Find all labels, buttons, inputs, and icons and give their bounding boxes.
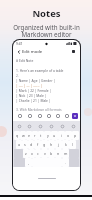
button[interactable]: v bbox=[41, 149, 48, 158]
button[interactable]: Italic bbox=[25, 111, 35, 121]
staticText: | ---- | --- | ------ | bbox=[16, 83, 43, 87]
button[interactable]: u bbox=[51, 131, 58, 140]
button[interactable]: r bbox=[32, 131, 38, 140]
staticText: e bbox=[28, 133, 31, 138]
button[interactable]: Suggestion bbox=[68, 121, 79, 131]
staticText: u bbox=[53, 133, 56, 138]
staticText: o bbox=[67, 133, 70, 138]
staticText: | Nick | 23 | Male | bbox=[16, 93, 47, 97]
staticText: Edit mode bbox=[22, 49, 43, 55]
staticText: c bbox=[37, 151, 39, 156]
button[interactable]: e bbox=[26, 131, 32, 140]
staticText: i bbox=[61, 133, 62, 138]
staticText: s bbox=[24, 142, 26, 147]
staticText: d bbox=[30, 142, 33, 147]
staticText: y bbox=[47, 133, 49, 138]
staticText: 2. bbox=[16, 73, 19, 77]
button[interactable]: w bbox=[20, 131, 26, 140]
staticText: v bbox=[44, 151, 46, 156]
staticText: f bbox=[37, 142, 39, 147]
button[interactable]: Back bbox=[15, 48, 22, 55]
staticText: z bbox=[25, 151, 27, 156]
button[interactable]: Comma bbox=[25, 158, 32, 167]
button[interactable]: q bbox=[14, 131, 20, 140]
button[interactable]: Link bbox=[35, 111, 44, 121]
button[interactable]: g bbox=[41, 140, 48, 149]
staticText: q bbox=[16, 133, 19, 138]
staticText: m bbox=[64, 151, 68, 156]
button[interactable]: x bbox=[29, 149, 35, 158]
button[interactable]: Suggestion bbox=[46, 121, 57, 131]
button[interactable]: Suggestion bbox=[35, 121, 46, 131]
staticText: | Mark | 22 | Female | bbox=[16, 88, 52, 92]
staticText: g bbox=[43, 142, 46, 147]
staticText: . bbox=[65, 160, 66, 165]
button[interactable]: d bbox=[28, 140, 34, 149]
button[interactable]: i bbox=[58, 131, 65, 140]
staticText: | Charlie | 21 | Male | bbox=[16, 98, 51, 102]
button[interactable]: s bbox=[22, 140, 28, 149]
button[interactable]: Code bbox=[62, 111, 71, 121]
button[interactable]: Suggestion bbox=[14, 121, 24, 131]
button[interactable]: p bbox=[72, 131, 79, 140]
button[interactable]: b bbox=[48, 149, 55, 158]
staticText: t bbox=[40, 133, 42, 138]
staticText: | Name | Age | Gender | bbox=[16, 78, 56, 82]
button[interactable]: Suggestion bbox=[24, 121, 35, 131]
button[interactable]: o bbox=[65, 131, 72, 140]
staticText: n bbox=[57, 151, 60, 156]
button[interactable]: k bbox=[62, 140, 69, 149]
staticText: 3. With Markdown all formats bbox=[16, 107, 62, 111]
button[interactable]: c bbox=[35, 149, 41, 158]
button[interactable]: z bbox=[23, 149, 29, 158]
staticText: Notes bbox=[32, 7, 61, 20]
button[interactable]: n bbox=[55, 149, 62, 158]
button[interactable]: f bbox=[34, 140, 41, 149]
button[interactable]: a bbox=[16, 140, 22, 149]
button[interactable]: t bbox=[38, 131, 44, 140]
button[interactable]: Bold bbox=[15, 111, 25, 121]
button[interactable]: m bbox=[62, 149, 69, 158]
staticText: 1. Here's an example of a table bbox=[16, 68, 64, 72]
staticText: l bbox=[72, 142, 73, 147]
staticText: b bbox=[50, 151, 53, 156]
staticText: Organized with built-in Markdown editor bbox=[13, 23, 80, 39]
staticText: r bbox=[34, 133, 36, 138]
button[interactable]: Period bbox=[62, 158, 69, 167]
staticText: x bbox=[31, 151, 33, 156]
staticText: k bbox=[65, 142, 67, 147]
button[interactable]: y bbox=[44, 131, 51, 140]
button[interactable]: l bbox=[69, 140, 76, 149]
staticText: h bbox=[50, 142, 53, 147]
button[interactable]: h bbox=[48, 140, 55, 149]
staticText: # Edit Note bbox=[16, 58, 34, 62]
staticText: 9:41 bbox=[16, 42, 23, 46]
button[interactable]: Suggestion bbox=[57, 121, 68, 131]
staticText: w bbox=[22, 133, 25, 138]
button[interactable]: j bbox=[55, 140, 62, 149]
staticText: j bbox=[58, 142, 59, 147]
staticText: , bbox=[28, 160, 29, 165]
staticText: a bbox=[18, 142, 21, 147]
staticText: p bbox=[74, 133, 77, 138]
button[interactable]: Keyboard bbox=[72, 113, 78, 119]
button[interactable]: Preview bbox=[70, 48, 77, 55]
button[interactable]: List bbox=[53, 111, 62, 121]
button[interactable]: Image bbox=[44, 111, 53, 121]
